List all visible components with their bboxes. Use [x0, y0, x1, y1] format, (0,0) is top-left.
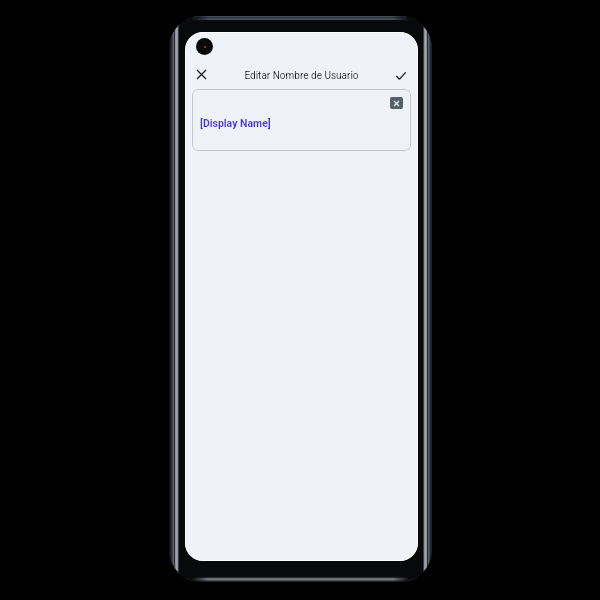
button[interactable]: Cerrar	[187, 60, 215, 88]
button[interactable]: [Display Name]	[192, 89, 411, 151]
button[interactable]: Borrar texto	[390, 97, 403, 109]
staticText: [Display Name]	[200, 117, 271, 129]
button[interactable]: Guardar	[387, 62, 415, 90]
staticText: Editar Nombre de Usuario	[244, 70, 359, 82]
